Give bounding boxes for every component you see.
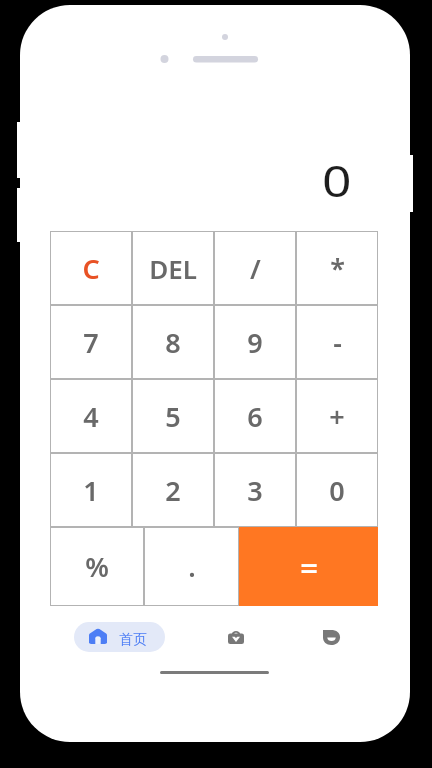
button[interactable]: 首页 [74,622,165,652]
button[interactable]: 0 [296,453,378,527]
button[interactable]: 9 [214,305,296,379]
staticText: % [85,548,109,585]
button[interactable]: + [296,379,378,453]
button[interactable]: 2 [132,453,214,527]
button[interactable]: - [296,305,378,379]
staticText: 9 [247,324,263,361]
button[interactable]: * [296,231,378,305]
button[interactable]: Shop [216,617,256,657]
staticText: DEL [149,251,197,286]
staticText: 4 [83,398,99,435]
staticText: 1 [83,472,99,509]
button[interactable]: 1 [50,453,132,527]
staticText: 3 [247,472,263,509]
staticText: C [82,250,100,287]
button[interactable]: % [50,527,144,606]
button[interactable]: / [214,231,296,305]
button[interactable]: Profile [311,617,351,657]
staticText: . [188,548,196,585]
button[interactable]: 5 [132,379,214,453]
button[interactable]: = [239,527,378,606]
staticText: 8 [165,324,181,361]
button[interactable]: 4 [50,379,132,453]
staticText: 2 [165,472,181,509]
button[interactable]: 7 [50,305,132,379]
button[interactable]: 3 [214,453,296,527]
staticText: = [300,546,318,588]
button[interactable]: . [144,527,239,606]
staticText: 6 [247,398,263,435]
staticText: 5 [165,398,181,435]
staticText: - [333,324,342,361]
staticText: 7 [83,324,99,361]
button[interactable]: 8 [132,305,214,379]
button[interactable]: C [50,231,132,305]
staticText: / [250,250,261,287]
staticText: 0 [322,151,352,210]
button[interactable]: 6 [214,379,296,453]
staticText: 0 [329,472,345,509]
staticText: 首页 [119,631,147,649]
staticText: + [329,398,345,435]
staticText: * [330,250,345,287]
button[interactable]: DEL [132,231,214,305]
